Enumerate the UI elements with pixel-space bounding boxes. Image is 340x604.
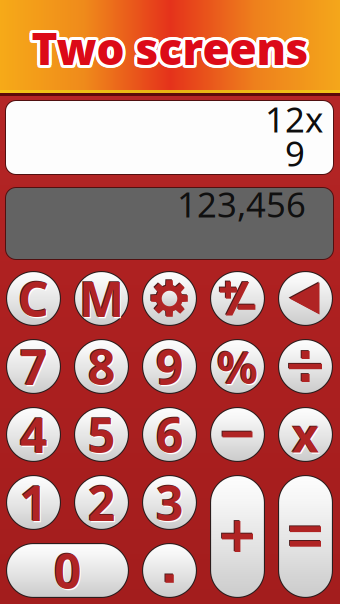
staticText: 6 xyxy=(156,403,183,466)
staticText: Two screens xyxy=(29,17,306,75)
staticText: 9 xyxy=(157,336,184,399)
staticText: % xyxy=(217,336,258,397)
staticText: 1 xyxy=(21,472,48,535)
staticText: M xyxy=(79,267,124,330)
staticText: 6 xyxy=(155,402,182,465)
staticText: Two screens xyxy=(34,17,311,75)
staticText: Two screens xyxy=(33,21,310,80)
staticText: 8 xyxy=(87,334,114,397)
button[interactable]: 6 xyxy=(142,407,197,462)
button[interactable]: 2 xyxy=(74,475,129,530)
staticText: Two screens xyxy=(28,19,305,77)
staticText: 12 xyxy=(265,96,305,142)
staticText: 3 xyxy=(155,470,182,533)
button[interactable]: Settings xyxy=(142,271,197,326)
staticText: Two screens xyxy=(30,21,307,80)
staticText: 9 xyxy=(156,335,183,398)
staticText: x xyxy=(293,405,320,467)
button[interactable]: 3 xyxy=(142,475,197,530)
staticText: 1 xyxy=(20,471,47,534)
staticText: Two screens xyxy=(30,16,307,74)
staticText: 2 xyxy=(88,471,115,534)
button[interactable]: Decimal point xyxy=(142,543,197,598)
staticText: 0 xyxy=(53,538,80,601)
staticText: 8 xyxy=(88,335,115,398)
staticText: Two screens xyxy=(31,22,308,80)
staticText: 8 xyxy=(89,336,116,399)
staticText: C xyxy=(17,266,48,329)
staticText: 1 xyxy=(19,470,46,533)
button[interactable]: 8 xyxy=(74,339,129,394)
button[interactable]: 4 xyxy=(6,407,61,462)
button[interactable]: 1 xyxy=(6,475,61,530)
staticText: % xyxy=(216,335,257,396)
staticText: C xyxy=(19,268,50,331)
staticText: 2 xyxy=(87,470,114,533)
staticText: 2 xyxy=(89,472,116,535)
staticText: Two screens xyxy=(34,20,311,79)
staticText: 9 xyxy=(155,334,182,397)
button[interactable]: 0 xyxy=(6,543,129,598)
button[interactable]: Divide xyxy=(278,339,333,394)
button[interactable]: M xyxy=(74,271,129,326)
staticText: 5 xyxy=(88,403,115,466)
staticText: 0 xyxy=(54,539,81,602)
button[interactable]: 9 xyxy=(142,339,197,394)
staticText: Two screens xyxy=(29,17,306,76)
staticText: x xyxy=(292,403,319,465)
staticText: Two screens xyxy=(29,21,306,79)
button[interactable]: % xyxy=(210,339,265,394)
staticText: 9 xyxy=(285,130,305,176)
staticText: 3 xyxy=(156,471,183,534)
button[interactable]: Plus xyxy=(210,475,265,598)
staticText: Two screens xyxy=(31,19,308,77)
staticText: 7 xyxy=(20,335,47,398)
button[interactable]: Minus xyxy=(210,407,265,462)
staticText: 4 xyxy=(21,404,48,467)
staticText: Two screens xyxy=(34,21,311,79)
staticText: 4 xyxy=(19,402,46,465)
button[interactable]: x xyxy=(278,407,333,462)
button[interactable]: Plus or minus xyxy=(210,271,265,326)
staticText: 123,456 xyxy=(177,181,306,227)
staticText: M xyxy=(78,266,123,329)
staticText: 3 xyxy=(157,472,184,535)
staticText: x xyxy=(291,403,318,465)
staticText: 7 xyxy=(21,336,48,399)
staticText: M xyxy=(80,268,125,331)
staticText: C xyxy=(18,267,49,330)
button[interactable]: 5 xyxy=(74,407,129,462)
staticText: Two screens xyxy=(29,20,306,79)
staticText: 4 xyxy=(20,403,47,466)
button[interactable]: 7 xyxy=(6,339,61,394)
staticText: Two screens xyxy=(33,16,310,74)
staticText: % xyxy=(218,337,259,398)
button[interactable]: Backspace xyxy=(278,271,333,326)
staticText: Two screens xyxy=(34,17,311,76)
staticText: 5 xyxy=(89,404,116,467)
staticText: 6 xyxy=(157,404,184,467)
staticText: 7 xyxy=(19,334,46,397)
button[interactable]: Equals xyxy=(278,475,333,598)
button[interactable]: C xyxy=(6,271,61,326)
staticText: Two screens xyxy=(31,16,308,74)
staticText: Two screens xyxy=(34,19,311,77)
staticText: x xyxy=(305,96,323,142)
staticText: 5 xyxy=(87,402,114,465)
staticText: 0 xyxy=(55,540,82,603)
